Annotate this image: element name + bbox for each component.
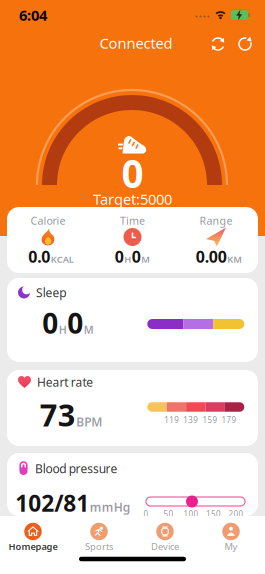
staticText: 0 xyxy=(42,304,58,342)
staticText: H xyxy=(124,253,131,265)
staticText: 0 xyxy=(143,509,148,519)
staticText: Homepage xyxy=(8,540,57,553)
button[interactable]: Homepage xyxy=(0,518,66,560)
staticText: M xyxy=(141,253,150,265)
button[interactable]: Reset xyxy=(234,33,256,55)
button[interactable]: Heart rate xyxy=(7,370,258,446)
button[interactable]: My xyxy=(198,518,264,560)
staticText: Device xyxy=(151,540,179,553)
staticText: 50 xyxy=(163,509,173,519)
staticText: 150 xyxy=(206,509,221,519)
staticText: 73 xyxy=(40,394,76,435)
staticText: 0 xyxy=(121,147,143,199)
staticText: Sports xyxy=(85,540,113,553)
staticText: KCAL xyxy=(51,253,74,265)
staticText: BPM xyxy=(76,414,102,430)
staticText: 159 xyxy=(202,415,217,425)
staticText: 139 xyxy=(183,415,198,425)
staticText: My xyxy=(224,540,237,553)
staticText: 200 xyxy=(228,509,243,519)
staticText: 119 xyxy=(164,415,179,425)
button[interactable]: Refresh xyxy=(207,33,229,55)
button[interactable]: Sleep xyxy=(7,278,258,362)
staticText: Calorie xyxy=(30,213,65,228)
staticText: KM xyxy=(227,253,242,265)
staticText: Blood pressure xyxy=(35,460,117,476)
staticText: Target:5000 xyxy=(93,189,172,209)
staticText: Sleep xyxy=(36,284,66,300)
staticText: 179 xyxy=(222,415,237,425)
staticText: 102/81 xyxy=(15,488,89,518)
staticText: 6:04 xyxy=(19,5,47,25)
staticText: Time xyxy=(120,213,145,228)
staticText: M xyxy=(84,323,94,337)
staticText: 0.00 xyxy=(196,246,227,267)
staticText: Connected xyxy=(99,33,172,53)
staticText: 100 xyxy=(183,509,198,519)
button[interactable]: Blood pressure xyxy=(7,453,258,516)
button[interactable]: Device xyxy=(132,518,198,560)
staticText: mmHg xyxy=(90,499,131,515)
staticText: H xyxy=(59,323,67,337)
staticText: 0.0 xyxy=(28,246,50,267)
staticText: Range xyxy=(199,213,232,228)
staticText: Heart rate xyxy=(37,374,93,390)
staticText: 0 xyxy=(67,304,83,342)
staticText: 0 xyxy=(115,246,124,267)
button[interactable]: Sports xyxy=(66,518,132,560)
staticText: 0 xyxy=(132,246,141,267)
